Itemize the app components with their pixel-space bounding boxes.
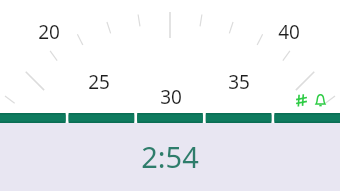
staticText: 40 — [278, 19, 300, 45]
staticText: 35 — [228, 69, 250, 95]
staticText: 25 — [88, 69, 110, 95]
button[interactable]: Vibration and alarm enabled — [294, 93, 328, 108]
staticText: 30 — [160, 84, 182, 110]
button[interactable]: 2:54 — [141, 137, 199, 176]
staticText: 20 — [38, 19, 60, 45]
button[interactable]: Timer progress — [0, 113, 340, 123]
button[interactable]: 20 — [0, 0, 340, 113]
